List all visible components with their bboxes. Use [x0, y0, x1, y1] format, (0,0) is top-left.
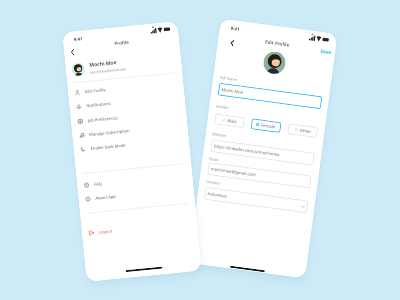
staticText: Mochi Moe	[221, 87, 244, 96]
staticText: FAQ	[94, 181, 102, 188]
staticText: About App	[95, 194, 117, 202]
staticText: Other	[299, 128, 312, 135]
button[interactable]: Back	[226, 36, 238, 49]
button[interactable]: FAQ	[76, 168, 193, 192]
button[interactable]: Mochi Moe	[65, 51, 182, 79]
button[interactable]: Job Preferences	[70, 104, 187, 129]
staticText: https://linkedin.com/u/mochimoe	[213, 143, 281, 158]
staticText: Email	[209, 156, 219, 162]
button[interactable]: Other	[287, 123, 318, 138]
staticText: Female	[261, 123, 276, 130]
button[interactable]: Female	[250, 118, 282, 133]
staticText: Website	[212, 131, 227, 138]
button[interactable]: Male	[214, 113, 245, 128]
button[interactable]: Indonesia	[204, 187, 308, 213]
button[interactable]: About App	[78, 182, 194, 206]
staticText: Mochi Moe	[89, 59, 117, 69]
button[interactable]: Manage Subscription	[72, 118, 188, 143]
staticText: Enable Dark Mode	[90, 142, 127, 152]
button[interactable]: Enable Dark Mode	[73, 132, 190, 157]
staticText: Logout	[98, 228, 113, 236]
staticText: 9:41	[73, 35, 83, 42]
staticText: mochimoe@email.com	[90, 66, 127, 75]
button[interactable]: Notifications	[69, 90, 185, 114]
staticText: Profile	[114, 39, 130, 46]
button[interactable]: Logout	[81, 216, 198, 240]
button[interactable]: Edit Profile	[67, 76, 184, 100]
staticText: Save	[320, 48, 332, 55]
button[interactable]: Back	[66, 46, 78, 58]
staticText: 9:41	[230, 25, 240, 32]
button[interactable]: Save	[315, 43, 336, 60]
button[interactable]: Mochi Moe	[218, 83, 322, 109]
staticText: Full Name	[220, 75, 238, 82]
staticText: Country	[206, 179, 220, 186]
staticText: Male	[227, 118, 238, 125]
staticText: Gender	[216, 103, 229, 110]
staticText: Notifications	[86, 101, 112, 109]
staticText: Job Preferences	[87, 115, 118, 124]
staticText: Edit Profile	[265, 38, 290, 48]
staticText: Edit Profile	[85, 87, 106, 95]
button[interactable]: mochimoe@gmail.com	[207, 162, 312, 188]
staticText: mochimoe@gmail.com	[210, 166, 257, 178]
staticText: Indonesia	[207, 191, 228, 200]
staticText: Manage Subscription	[89, 128, 130, 138]
button[interactable]: https://linkedin.com/u/mochimoe	[210, 139, 315, 166]
